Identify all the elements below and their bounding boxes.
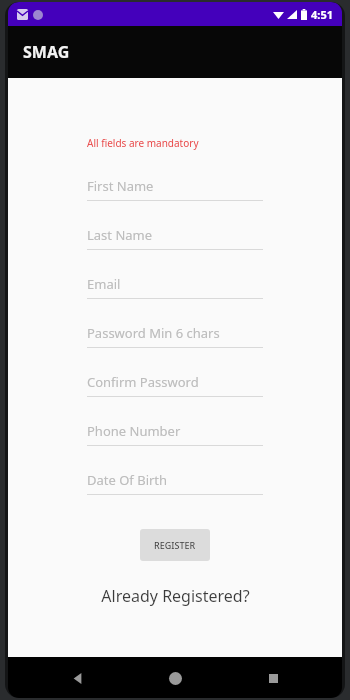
staticText: Email bbox=[87, 275, 121, 293]
button[interactable]: Already Registered? bbox=[87, 585, 263, 607]
staticText: REGISTER bbox=[154, 539, 196, 551]
staticText: Password Min 6 chars bbox=[87, 324, 220, 342]
button[interactable]: Home bbox=[158, 661, 192, 695]
staticText: 4:51 bbox=[311, 7, 333, 22]
button[interactable]: Last Name bbox=[87, 221, 263, 250]
button[interactable]: Date Of Birth bbox=[87, 466, 263, 495]
staticText: Already Registered? bbox=[101, 585, 250, 607]
staticText: Confirm Password bbox=[87, 373, 199, 391]
staticText: First Name bbox=[87, 177, 154, 195]
button[interactable]: Confirm Password bbox=[87, 368, 263, 397]
staticText: Phone Number bbox=[87, 422, 181, 440]
staticText: Date Of Birth bbox=[87, 471, 168, 489]
staticText: All fields are mandatory bbox=[87, 136, 199, 150]
button[interactable]: Email bbox=[87, 270, 263, 299]
staticText: SMAG bbox=[23, 41, 70, 63]
button[interactable]: First Name bbox=[87, 172, 263, 201]
button[interactable]: Recent apps bbox=[256, 661, 290, 695]
button[interactable]: REGISTER bbox=[140, 529, 210, 561]
button[interactable]: Phone Number bbox=[87, 417, 263, 446]
staticText: Last Name bbox=[87, 226, 153, 244]
button[interactable]: Back bbox=[60, 661, 94, 695]
button[interactable]: Password Min 6 chars bbox=[87, 319, 263, 348]
